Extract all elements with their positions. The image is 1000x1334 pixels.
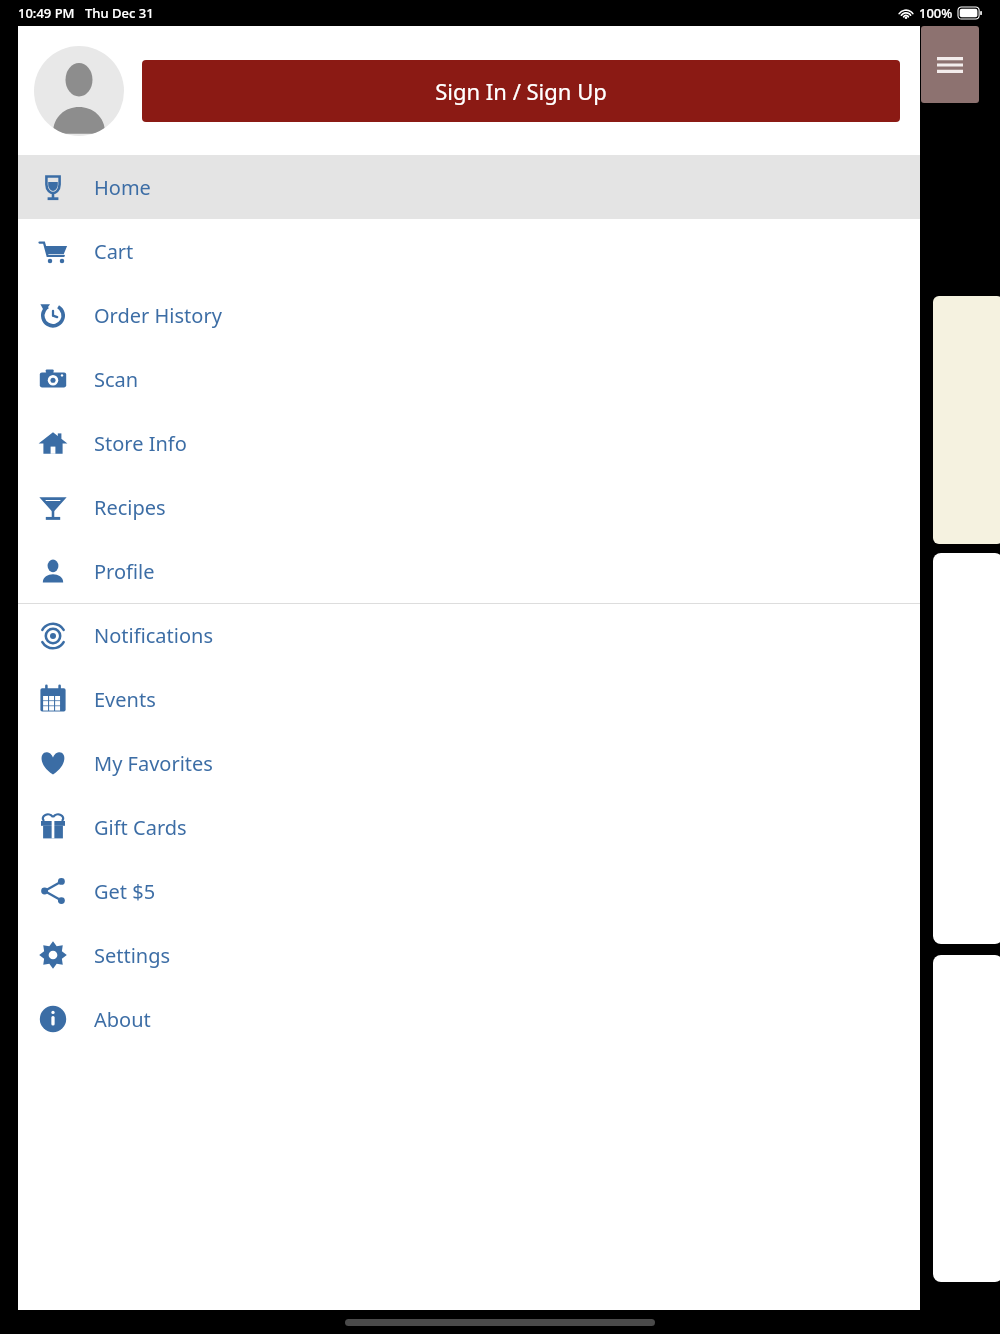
staticText: About — [94, 1006, 151, 1033]
button[interactable]: Profile picture — [34, 46, 124, 136]
staticText: Get $5 — [94, 878, 156, 905]
staticText: Recipes — [94, 494, 166, 521]
staticText: Events — [94, 686, 156, 713]
staticText: Thu Dec 31 — [85, 4, 154, 22]
staticText: Store Info — [94, 430, 187, 457]
staticText: Cart — [94, 238, 134, 265]
button[interactable]: Settings — [18, 923, 920, 987]
button[interactable]: Events — [18, 667, 920, 731]
staticText: Sign In / Sign Up — [435, 76, 607, 106]
button[interactable]: My Favorites — [18, 731, 920, 795]
button[interactable]: Open menu — [921, 26, 979, 103]
button[interactable]: Get $5 — [18, 859, 920, 923]
staticText: Order History — [94, 302, 222, 329]
staticText: Scan — [94, 366, 139, 393]
staticText: 10:49 PM — [18, 4, 75, 22]
button[interactable]: Notifications — [18, 604, 920, 667]
button[interactable]: Store Info — [18, 411, 920, 475]
button[interactable]: Scan — [18, 347, 920, 411]
staticText: Profile — [94, 558, 155, 585]
staticText: Notifications — [94, 622, 213, 649]
button[interactable]: Profile — [18, 539, 920, 603]
staticText: Gift Cards — [94, 814, 187, 841]
button[interactable]: Cart — [18, 219, 920, 283]
staticText: Settings — [94, 942, 171, 969]
button[interactable]: About — [18, 987, 920, 1051]
staticText: 100% — [919, 4, 953, 22]
button[interactable]: Recipes — [18, 475, 920, 539]
staticText: Home — [94, 174, 151, 201]
button[interactable]: Gift Cards — [18, 795, 920, 859]
staticText: My Favorites — [94, 750, 213, 777]
button[interactable]: Home — [18, 155, 920, 219]
button[interactable]: Order History — [18, 283, 920, 347]
button[interactable]: Sign In / Sign Up — [142, 60, 900, 122]
